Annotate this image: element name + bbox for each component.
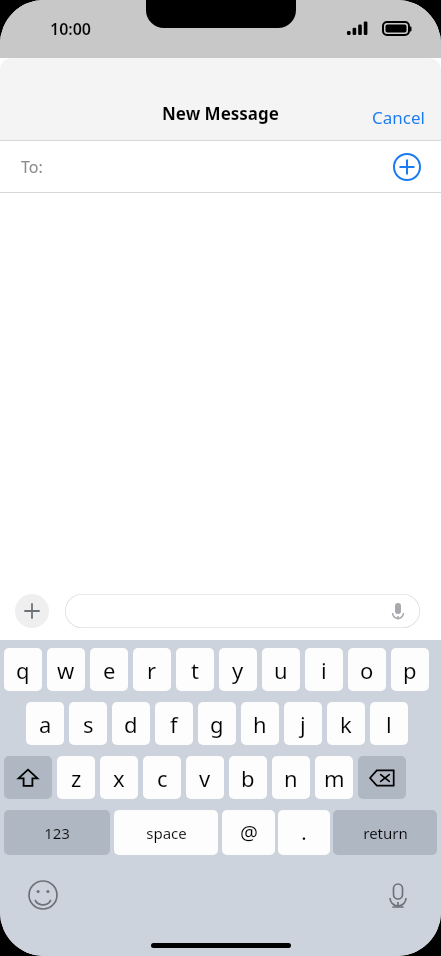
staticText: s [83, 709, 94, 739]
staticText: space [146, 823, 187, 843]
staticText: y [232, 655, 244, 685]
staticText: e [103, 655, 116, 685]
staticText: n [284, 763, 298, 793]
button[interactable]: Dictation [383, 880, 413, 910]
button[interactable]: n [272, 756, 310, 799]
staticText: r [147, 655, 157, 685]
staticText: g [210, 709, 224, 739]
button[interactable]: x [100, 756, 138, 799]
button[interactable]: j [284, 702, 322, 745]
staticText: Cancel [372, 106, 425, 129]
button[interactable]: Cancel [358, 96, 441, 141]
staticText: q [16, 655, 30, 685]
button[interactable]: v [186, 756, 224, 799]
button[interactable]: f [155, 702, 193, 745]
staticText: 123 [44, 823, 70, 843]
button[interactable]: h [241, 702, 279, 745]
staticText: a [39, 709, 52, 739]
button[interactable]: r [133, 648, 171, 691]
button[interactable]: g [198, 702, 236, 745]
staticText: i [321, 655, 327, 685]
staticText: w [57, 655, 75, 685]
button[interactable]: z [57, 756, 95, 799]
button[interactable]: 123 [4, 810, 110, 855]
button[interactable]: return [333, 810, 437, 855]
button[interactable]: k [327, 702, 365, 745]
staticText: New Message [162, 102, 279, 125]
staticText: To: [21, 156, 43, 178]
button[interactable]: . [278, 810, 330, 855]
staticText: p [403, 655, 417, 685]
staticText: c [157, 763, 168, 793]
staticText: h [253, 709, 267, 739]
staticText: x [113, 763, 125, 793]
button[interactable]: s [69, 702, 107, 745]
staticText: 10:00 [50, 18, 92, 40]
staticText: o [360, 655, 374, 685]
staticText: t [191, 655, 199, 685]
staticText: @ [240, 819, 258, 846]
button[interactable]: y [219, 648, 257, 691]
button[interactable]: a [26, 702, 64, 745]
button[interactable]: m [315, 756, 353, 799]
staticText: u [274, 655, 288, 685]
button[interactable]: o [348, 648, 386, 691]
staticText: m [324, 763, 345, 793]
button[interactable]: w [47, 648, 85, 691]
staticText: f [170, 709, 178, 739]
button[interactable]: t [176, 648, 214, 691]
staticText: d [124, 709, 138, 739]
button[interactable]: To: [0, 141, 441, 193]
staticText: b [241, 763, 255, 793]
staticText: l [386, 709, 392, 739]
button[interactable]: Backspace [358, 756, 406, 799]
staticText: k [340, 709, 352, 739]
button[interactable]: Add attachment [15, 594, 49, 628]
button[interactable]: Shift [4, 756, 52, 799]
button[interactable]: Emoji [28, 880, 58, 910]
button[interactable]: b [229, 756, 267, 799]
button[interactable]: u [262, 648, 300, 691]
staticText: v [199, 763, 211, 793]
button[interactable]: space [114, 810, 218, 855]
button[interactable]: e [90, 648, 128, 691]
button[interactable]: l [370, 702, 408, 745]
staticText: . [301, 819, 307, 846]
button[interactable]: c [143, 756, 181, 799]
staticText: j [300, 709, 306, 739]
button[interactable]: Add contact [393, 153, 421, 181]
button[interactable]: @ [222, 810, 275, 855]
button[interactable]: d [112, 702, 150, 745]
staticText: return [363, 823, 408, 843]
button[interactable]: i [305, 648, 343, 691]
button[interactable] [65, 594, 420, 628]
button[interactable]: q [4, 648, 42, 691]
button[interactable]: p [391, 648, 429, 691]
staticText: z [71, 763, 82, 793]
